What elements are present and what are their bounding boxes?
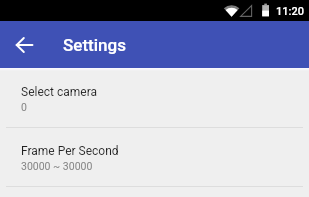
button[interactable]: Back — [0, 21, 48, 68]
staticText: 11:20 — [276, 5, 304, 18]
staticText: Frame Per Second — [21, 144, 119, 158]
staticText: 30000 ~ 30000 — [21, 160, 93, 172]
staticText: Settings — [63, 35, 126, 55]
staticText: Select camera — [21, 85, 98, 99]
button[interactable]: Select camera — [0, 68, 309, 127]
staticText: 0 — [21, 101, 27, 113]
button[interactable]: Frame Per Second — [0, 128, 309, 186]
